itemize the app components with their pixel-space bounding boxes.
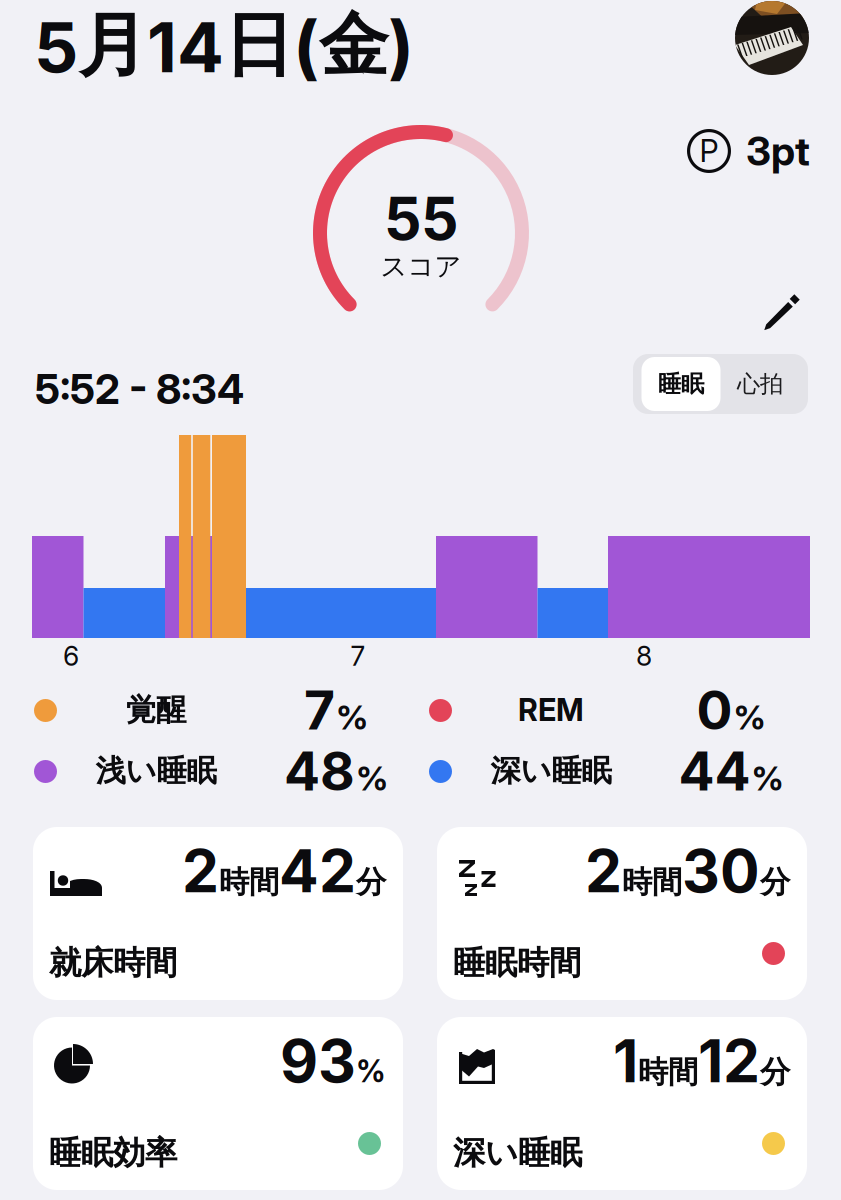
staticText: 8 [636, 640, 652, 672]
staticText: 深い睡眠 [453, 1133, 582, 1173]
staticText: 48 [284, 739, 355, 803]
button[interactable]: Edit [756, 286, 808, 338]
staticText: 時間 [219, 863, 279, 901]
staticText: 7 [350, 640, 365, 672]
button[interactable]: 2 [437, 827, 807, 1000]
button[interactable]: Profile [735, 1, 809, 75]
button[interactable]: 2 [33, 827, 403, 1000]
staticText: 42 [279, 835, 356, 906]
staticText: 分 [356, 863, 386, 901]
staticText: REM [518, 692, 584, 728]
staticText: 覚醒 [126, 691, 186, 729]
staticText: 時間 [622, 863, 682, 901]
staticText: % [336, 697, 368, 737]
staticText: 睡眠効率 [49, 1133, 177, 1173]
staticText: 30 [682, 835, 760, 906]
staticText: 5:52 - 8:34 [35, 364, 244, 414]
staticText: 12 [698, 1025, 760, 1096]
button[interactable]: 3 points [687, 125, 810, 177]
button[interactable]: 1 [437, 1017, 807, 1190]
staticText: 睡眠 [658, 369, 704, 399]
staticText: % [356, 758, 388, 798]
staticText: % [356, 1053, 386, 1090]
staticText: % [733, 697, 765, 737]
staticText: 1 [613, 1025, 638, 1096]
staticText: 2 [585, 835, 622, 906]
staticText: 55 [384, 183, 458, 254]
staticText: 睡眠時間 [453, 943, 581, 983]
staticText: 浅い睡眠 [95, 752, 216, 790]
staticText: 93 [280, 1025, 356, 1096]
staticText: P [699, 132, 718, 169]
staticText: 7 [304, 678, 335, 742]
staticText: スコア [380, 250, 461, 283]
staticText: 分 [760, 863, 790, 901]
staticText: 時間 [638, 1053, 698, 1091]
staticText: 44 [678, 739, 750, 803]
staticText: 5月14日(金) [34, 2, 414, 89]
staticText: 0 [696, 678, 732, 742]
button[interactable]: 心拍 [720, 357, 799, 411]
staticText: 分 [760, 1053, 790, 1091]
staticText: 3pt [746, 127, 810, 175]
staticText: 深い睡眠 [490, 752, 611, 790]
staticText: 心拍 [737, 369, 783, 399]
staticText: 6 [63, 640, 79, 672]
staticText: % [751, 758, 783, 798]
button[interactable]: 睡眠 [641, 357, 720, 411]
button[interactable]: 93 [33, 1017, 403, 1190]
staticText: 就床時間 [49, 943, 177, 983]
staticText: 2 [182, 835, 219, 906]
